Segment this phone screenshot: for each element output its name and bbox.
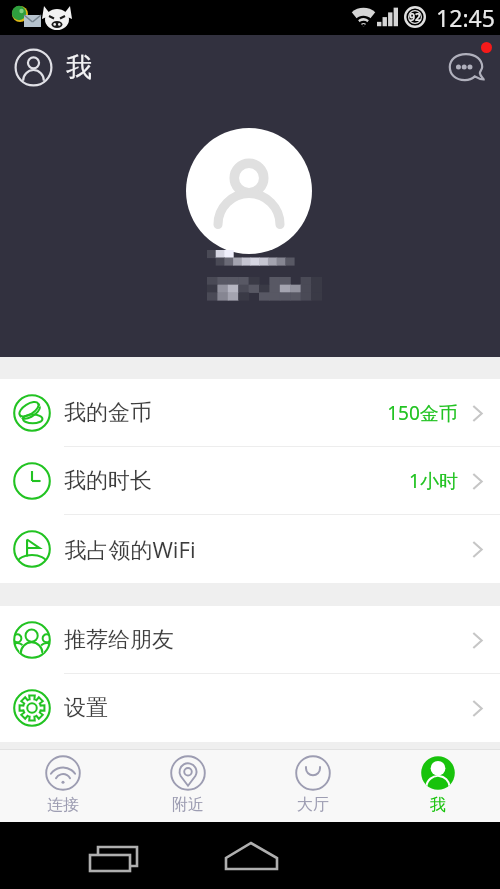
staticText: 150金币 — [387, 400, 458, 426]
staticText: 我占领的WiFi — [64, 534, 196, 564]
button[interactable]: 推荐给朋友 — [0, 606, 500, 674]
staticText: 12:45 — [436, 2, 495, 33]
staticText: 连接 — [47, 795, 79, 815]
button[interactable]: 大厅 — [250, 750, 375, 815]
staticText: 我 — [430, 795, 446, 815]
staticText: 我 — [66, 51, 92, 84]
staticText: 我的时长 — [64, 467, 152, 495]
button[interactable]: 我 — [375, 750, 500, 815]
staticText: 92 — [409, 10, 421, 24]
button[interactable]: 我的时长 — [0, 447, 500, 515]
staticText: 1小时 — [409, 468, 458, 494]
button[interactable]: 设置 — [0, 674, 500, 742]
button[interactable]: Messages — [448, 53, 484, 81]
button[interactable]: 我的金币 — [0, 379, 500, 447]
staticText: 我的金币 — [64, 399, 152, 427]
staticText: 推荐给朋友 — [64, 626, 174, 654]
staticText: 附近 — [172, 795, 204, 815]
button[interactable]: 连接 — [0, 750, 125, 815]
staticText: 大厅 — [297, 795, 329, 815]
button[interactable]: 附近 — [125, 750, 250, 815]
staticText: 设置 — [64, 694, 108, 722]
button[interactable]: 我占领的WiFi — [0, 515, 500, 583]
